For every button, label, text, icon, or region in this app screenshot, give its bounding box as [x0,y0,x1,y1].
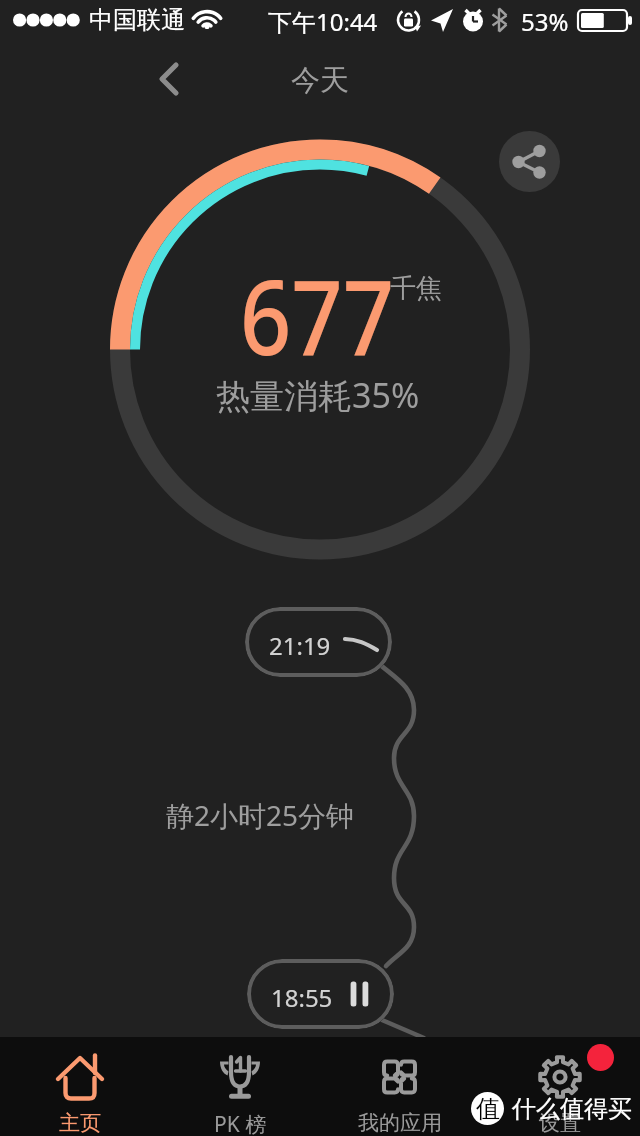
staticText: 18:55 [271,981,333,1014]
staticText: 热量消耗35% [216,372,420,418]
staticText: PK 榜 [214,1110,267,1136]
staticText: 设置 [539,1110,581,1136]
staticText: 中国联通 [89,5,185,35]
staticText: 今天 [0,62,640,99]
button[interactable]: 18:55 [247,959,394,1029]
staticText: 677 [240,245,394,385]
button[interactable]: 我的应用 [320,1037,480,1136]
button[interactable]: Share [499,131,560,192]
staticText: 什么值得买 [512,1094,632,1124]
button[interactable]: Back [140,50,198,108]
button[interactable]: 主页 [0,1037,160,1136]
staticText: 主页 [59,1110,101,1136]
button[interactable]: 21:19 [245,607,392,677]
button[interactable]: 设置 [480,1037,640,1136]
button[interactable]: PK 榜 [160,1037,320,1136]
staticText: 21:19 [269,629,331,662]
staticText: 53% [521,5,569,38]
staticText: 千焦 [390,272,442,305]
staticText: 值 [476,1094,500,1124]
staticText: 静2小时25分钟 [166,796,355,834]
staticText: 下午10:44 [268,5,378,38]
staticText: 我的应用 [358,1110,442,1136]
